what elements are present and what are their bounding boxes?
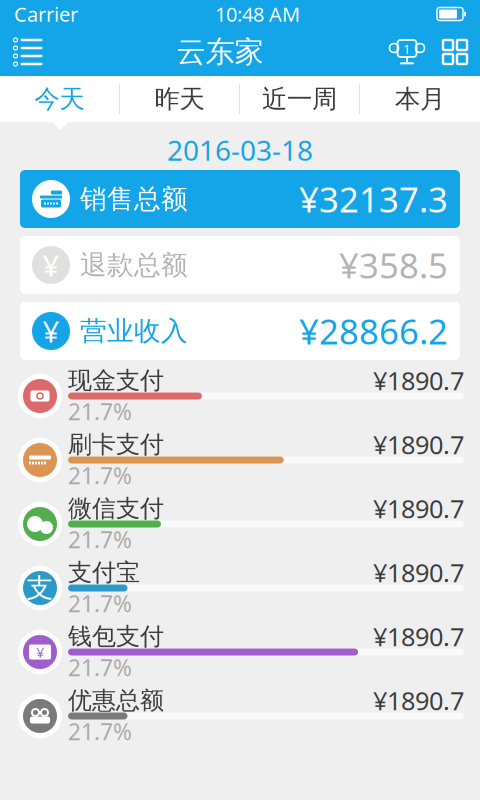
staticText: ¥ — [42, 311, 59, 350]
staticText: ¥28866.2 — [299, 308, 448, 354]
staticText: 2016-03-18 — [167, 131, 313, 169]
staticText: 优惠总额 — [68, 686, 164, 715]
button[interactable]: 近一周 — [240, 76, 360, 122]
button[interactable]: 优惠总额 — [16, 686, 464, 746]
staticText: 21.7% — [68, 652, 132, 682]
staticText: 10:48 AM — [215, 1, 300, 27]
staticText: 现金支付 — [68, 366, 164, 395]
staticText: ¥ — [36, 642, 44, 662]
staticText: ¥358.5 — [339, 242, 448, 288]
staticText: 昨天 — [154, 83, 204, 114]
button[interactable]: 现金支付 — [16, 366, 464, 426]
staticText: 云东家 — [176, 34, 263, 70]
staticText: 1 — [403, 40, 411, 57]
staticText: ¥ — [42, 245, 59, 284]
staticText: 近一周 — [262, 83, 337, 114]
staticText: 今天 — [34, 83, 84, 114]
button[interactable]: 昨天 — [120, 76, 240, 122]
staticText: ¥1890.7 — [373, 620, 464, 653]
button[interactable]: 销售总额 — [20, 170, 460, 228]
staticText: 微信支付 — [68, 494, 164, 523]
button[interactable]: Menu — [0, 28, 56, 76]
staticText: Carrier — [14, 1, 78, 27]
staticText: 21.7% — [68, 524, 132, 554]
staticText: 刷卡支付 — [68, 430, 164, 459]
staticText: 21.7% — [68, 460, 132, 490]
staticText: ¥32137.3 — [299, 176, 448, 222]
staticText: ¥1890.7 — [373, 364, 464, 397]
staticText: 销售总额 — [80, 183, 188, 215]
button[interactable]: 刷卡支付 — [16, 430, 464, 490]
staticText: 21.7% — [68, 588, 132, 618]
staticText: 21.7% — [68, 716, 132, 746]
staticText: ¥1890.7 — [373, 684, 464, 717]
button[interactable]: Modules — [430, 28, 480, 76]
staticText: 本月 — [395, 83, 445, 114]
staticText: ¥1890.7 — [373, 428, 464, 461]
staticText: 营业收入 — [80, 315, 188, 347]
button[interactable]: 今天 — [0, 76, 120, 122]
button[interactable]: ¥ — [20, 302, 460, 360]
button[interactable]: 微信支付 — [16, 494, 464, 554]
staticText: ¥1890.7 — [373, 556, 464, 589]
button[interactable]: ¥ — [20, 236, 460, 294]
staticText: 退款总额 — [80, 249, 188, 281]
staticText: 支付宝 — [68, 558, 140, 587]
staticText: ¥1890.7 — [373, 492, 464, 525]
button[interactable]: Achievements — [384, 28, 430, 76]
button[interactable]: ¥ — [16, 622, 464, 682]
staticText: 21.7% — [68, 396, 132, 426]
button[interactable]: 本月 — [360, 76, 480, 122]
button[interactable]: 支 — [16, 558, 464, 618]
staticText: 钱包支付 — [68, 622, 164, 651]
staticText: 支 — [26, 572, 53, 604]
